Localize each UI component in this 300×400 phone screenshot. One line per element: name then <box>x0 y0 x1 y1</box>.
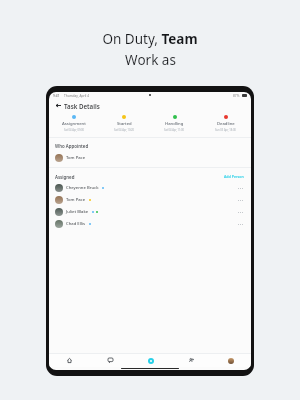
button[interactable]: Profile <box>211 354 251 367</box>
staticText: Juliet Blake <box>66 209 89 215</box>
staticText: Task Details <box>64 102 100 110</box>
button[interactable]: Chat <box>90 354 131 367</box>
staticText: Cheyenne Bruck <box>66 185 99 191</box>
staticText: 9:41 <box>53 94 60 98</box>
button[interactable]: Team <box>171 354 211 367</box>
staticText: Assigned <box>55 174 75 180</box>
button[interactable]: More options <box>236 198 245 203</box>
button[interactable]: More options <box>236 222 245 227</box>
staticText: Sun 05 Apr, 18:00 <box>215 128 236 132</box>
button[interactable]: Add Person <box>223 173 245 180</box>
staticText: Assignment <box>62 121 86 127</box>
staticText: Work as <box>125 51 176 69</box>
staticText: Who Appointed <box>55 143 89 149</box>
staticText: Tom Pace <box>66 197 86 203</box>
button[interactable]: More options <box>236 210 245 215</box>
button[interactable]: Assignment <box>49 114 99 133</box>
button[interactable]: Deadline <box>200 114 251 133</box>
button[interactable]: Home <box>49 354 90 367</box>
staticText: Sat 04 Apr, 11:00 <box>164 128 185 132</box>
button[interactable]: Back <box>54 101 63 110</box>
staticText: Sat 04 Apr, 09:00 <box>64 128 85 132</box>
staticText: Started <box>117 121 132 127</box>
button[interactable]: Tom Pace <box>49 194 251 206</box>
staticText: Sat 04 Apr, 10:20 <box>114 128 135 132</box>
staticText: Add Person <box>224 174 244 179</box>
button[interactable]: Started <box>99 114 149 133</box>
button[interactable]: Chad Ellis <box>49 218 251 230</box>
staticText: On Duty, Team <box>102 30 198 48</box>
button[interactable]: Juliet Blake <box>49 206 251 218</box>
button[interactable]: Tasks <box>131 354 171 367</box>
staticText: Chad Ellis <box>66 221 86 227</box>
button[interactable]: Tom Pace <box>49 152 251 164</box>
staticText: Tom Pace <box>66 155 86 161</box>
staticText: Thursday, April 4 <box>64 94 90 98</box>
staticText: Deadline <box>217 121 235 127</box>
button[interactable]: Cheyenne Bruck <box>49 182 251 194</box>
staticText: 87% <box>233 94 240 98</box>
button[interactable]: More options <box>236 186 245 191</box>
button[interactable]: Handling <box>149 114 200 133</box>
staticText: Handling <box>165 121 184 127</box>
